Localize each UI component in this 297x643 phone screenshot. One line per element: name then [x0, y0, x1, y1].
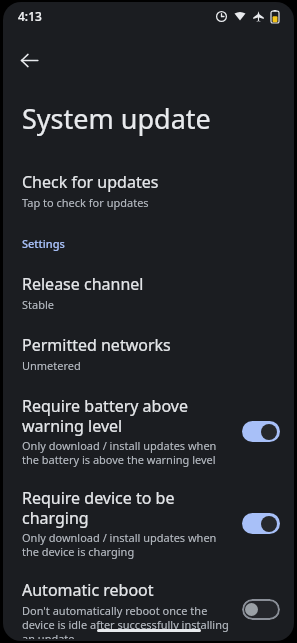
button[interactable]: Require device to be charging: [3, 485, 294, 561]
staticText: Only download / install updates when the…: [22, 530, 232, 559]
staticText: Tap to check for updates: [22, 195, 149, 210]
staticText: Don't automatically reboot once the devi…: [22, 603, 232, 639]
staticText: Unmetered: [22, 358, 81, 373]
staticText: Automatic reboot: [22, 579, 154, 601]
button[interactable]: Check for updates: [3, 169, 294, 212]
staticText: System update: [22, 100, 211, 137]
staticText: Only download / install updates when the…: [22, 438, 232, 467]
button[interactable]: Release channel: [3, 271, 294, 314]
staticText: Check for updates: [22, 171, 159, 193]
staticText: Require device to be charging: [22, 487, 232, 528]
staticText: 4:13: [18, 8, 42, 24]
staticText: Release channel: [22, 273, 144, 295]
staticText: Permitted networks: [22, 334, 171, 356]
staticText: Stable: [22, 297, 54, 312]
button[interactable]: On: [242, 421, 280, 442]
button[interactable]: Automatic reboot: [3, 577, 294, 641]
button[interactable]: Require battery above warning level: [3, 393, 294, 469]
button[interactable]: On: [242, 513, 280, 534]
button[interactable]: Back: [11, 42, 47, 78]
staticText: Require battery above warning level: [22, 395, 232, 436]
button[interactable]: Permitted networks: [3, 332, 294, 375]
staticText: Settings: [22, 236, 65, 251]
button[interactable]: Off: [242, 599, 280, 620]
